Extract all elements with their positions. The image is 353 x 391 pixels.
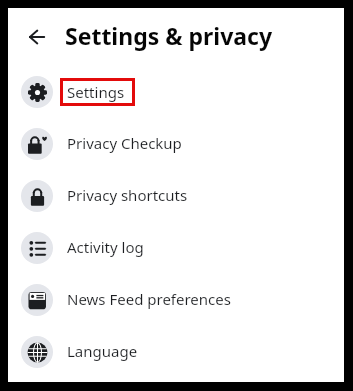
staticText: Privacy Checkup xyxy=(67,133,182,153)
staticText: Settings & privacy xyxy=(65,20,273,51)
button[interactable]: Privacy Checkup xyxy=(8,118,344,170)
button[interactable]: Back xyxy=(22,22,52,52)
button[interactable]: News Feed preferences xyxy=(8,274,344,326)
staticText: Privacy shortcuts xyxy=(67,185,188,205)
button[interactable]: Privacy shortcuts xyxy=(8,170,344,222)
staticText: News Feed preferences xyxy=(67,289,231,309)
button[interactable]: Language xyxy=(8,326,344,378)
staticText: Activity log xyxy=(67,237,144,257)
staticText: Language xyxy=(67,341,138,361)
staticText: Settings xyxy=(67,82,125,102)
button[interactable]: Activity log xyxy=(8,222,344,274)
button[interactable]: Settings xyxy=(8,66,344,118)
